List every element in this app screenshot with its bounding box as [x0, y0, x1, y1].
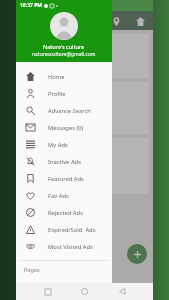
- button[interactable]: Inactive Ads: [16, 153, 112, 170]
- staticText: Rejected Ads: [48, 209, 83, 217]
- staticText: naturesculture@gmail.com: [32, 51, 96, 58]
- staticText: Dettol antiseptic liquid: [24, 142, 83, 149]
- staticText: Advance Search: [48, 107, 91, 115]
- button[interactable]: Profile: [16, 85, 112, 102]
- button[interactable]: Fav Ads: [16, 187, 112, 204]
- staticText: Pages: [24, 266, 40, 273]
- button[interactable]: Home: [16, 68, 112, 85]
- button[interactable]: Location: [109, 14, 123, 28]
- button[interactable]: Profile photo: [50, 12, 78, 40]
- button[interactable]: Dettol antiseptic liquid: [20, 138, 149, 194]
- staticText: Profile: [48, 90, 66, 98]
- staticText: Nature's culture: [43, 43, 85, 50]
- button[interactable]: Samsung A50 4/128GB: [20, 34, 149, 78]
- button[interactable]: Home: [133, 14, 147, 28]
- button[interactable]: Messages (0): [16, 119, 112, 136]
- button[interactable]: Recents: [41, 285, 54, 298]
- button[interactable]: Expired/Sold Ads: [16, 221, 112, 238]
- button[interactable]: Home: [78, 285, 91, 298]
- staticText: Featured Ads: [48, 175, 84, 183]
- staticText: Lenovo ideapad slim i5/8gb: [24, 86, 95, 93]
- staticText: Samsung A50 4/128GB: [24, 38, 85, 45]
- staticText: Home: [48, 73, 65, 81]
- staticText: Messages (0): [48, 124, 84, 132]
- button[interactable]: Add: [127, 244, 147, 264]
- button[interactable]: Most Visited Ads: [16, 238, 112, 255]
- button[interactable]: My Ads: [16, 136, 112, 153]
- staticText: Fav Ads: [48, 192, 69, 200]
- button[interactable]: Advance Search: [16, 102, 112, 119]
- staticText: Inactive Ads: [48, 158, 81, 166]
- staticText: My Ads: [48, 141, 68, 149]
- staticText: 10:37 PM: [20, 2, 42, 9]
- staticText: Expired/Sold Ads: [48, 226, 96, 234]
- button[interactable]: Lenovo ideapad slim i5/8gb: [20, 82, 149, 134]
- staticText: Most Visited Ads: [48, 243, 93, 251]
- button[interactable]: Back: [116, 285, 129, 298]
- button[interactable]: Rejected Ads: [16, 204, 112, 221]
- button[interactable]: Featured Ads: [16, 170, 112, 187]
